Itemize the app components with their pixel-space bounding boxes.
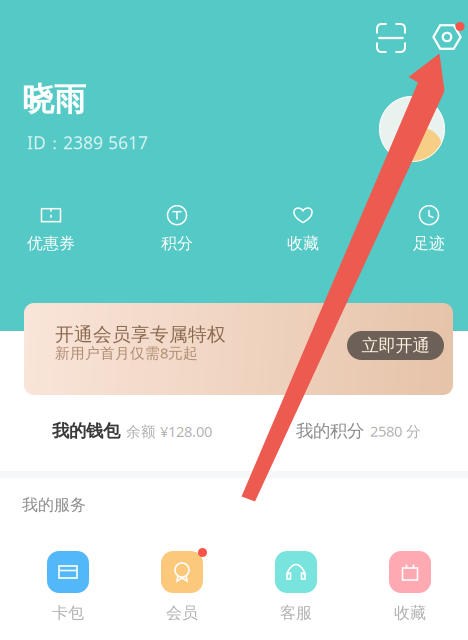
button[interactable]: 收藏 xyxy=(353,551,467,623)
staticText: 收藏 xyxy=(287,234,319,253)
staticText: 足迹 xyxy=(413,234,445,253)
staticText: 会员 xyxy=(166,603,198,623)
staticText: 卡包 xyxy=(52,603,84,623)
staticText: 新用户首月仅需8元起 xyxy=(55,343,198,362)
button[interactable]: 我的积分 xyxy=(296,408,421,454)
staticText: 2580 分 xyxy=(370,421,421,441)
button[interactable]: 客服 xyxy=(239,551,353,623)
button[interactable]: 开通会员享专属特权 xyxy=(24,303,453,395)
button[interactable]: 会员 xyxy=(125,551,239,623)
staticText: 我的钱包 xyxy=(52,420,120,442)
staticText: 我的服务 xyxy=(22,495,86,515)
button[interactable]: 积分 xyxy=(127,203,227,255)
staticText: 收藏 xyxy=(394,603,426,623)
button[interactable]: 头像 xyxy=(379,96,445,162)
staticText: 开通会员享专属特权 xyxy=(55,323,226,346)
staticText: 积分 xyxy=(161,234,193,253)
button[interactable]: 收藏 xyxy=(253,203,353,255)
button[interactable]: 扫一扫 xyxy=(369,16,413,60)
staticText: 我的积分 xyxy=(296,420,364,442)
staticText: 晓雨 xyxy=(22,80,86,119)
staticText: 余额 ¥128.00 xyxy=(126,421,212,441)
staticText: 优惠券 xyxy=(27,234,75,253)
staticText: ID：2389 5617 xyxy=(27,131,148,154)
staticText: 立即开通 xyxy=(361,335,429,356)
button[interactable]: 足迹 xyxy=(379,203,468,255)
staticText: 客服 xyxy=(280,603,312,623)
button[interactable]: 设置 xyxy=(425,15,468,59)
button[interactable]: 我的钱包 xyxy=(52,408,212,454)
button[interactable]: 优惠券 xyxy=(1,203,101,255)
button[interactable]: 卡包 xyxy=(11,551,125,623)
